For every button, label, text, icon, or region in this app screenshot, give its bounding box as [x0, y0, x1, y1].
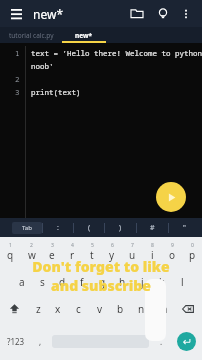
button[interactable]: k [152, 268, 172, 295]
button[interactable]: Hints [152, 3, 174, 25]
button[interactable]: Backspace [173, 295, 202, 322]
staticText: Don't forget to like [32, 257, 170, 276]
button[interactable]: Open folder [126, 3, 148, 25]
button[interactable]: a [11, 268, 32, 295]
staticText: i [151, 248, 154, 262]
staticText: 1 [15, 48, 20, 58]
button[interactable]: g [92, 268, 112, 295]
button[interactable]: 8 [142, 241, 162, 268]
button[interactable]: : [43, 218, 73, 237]
button[interactable]: c [68, 295, 89, 322]
button[interactable]: ( [74, 218, 104, 237]
staticText: 1 [9, 242, 12, 249]
staticText: b [117, 302, 124, 316]
button[interactable]: f [72, 268, 92, 295]
staticText: tutorial calc.py [9, 31, 54, 40]
staticText: a [19, 275, 25, 289]
staticText: 9 [171, 242, 174, 249]
staticText: u [129, 248, 136, 262]
button[interactable]: 0 [182, 241, 202, 268]
staticText: e [49, 248, 55, 262]
staticText: 2 [15, 74, 20, 84]
staticText: ( [88, 223, 91, 233]
button[interactable]: l [172, 268, 192, 295]
staticText: l [181, 275, 184, 289]
button[interactable]: " [169, 218, 200, 237]
button[interactable]: 9 [162, 241, 182, 268]
staticText: print(text) [31, 87, 81, 97]
button[interactable]: v [89, 295, 110, 322]
staticText: p [189, 248, 196, 262]
button[interactable]: 7 [122, 241, 142, 268]
button[interactable]: b [110, 295, 131, 322]
staticText: , [39, 336, 42, 347]
staticText: Tab [22, 224, 32, 232]
button[interactable]: n [131, 295, 152, 322]
staticText: text = 'Hello there! Welcome to python [31, 48, 202, 58]
button[interactable]: 3 [42, 241, 62, 268]
staticText: z [36, 302, 41, 316]
staticText: h [119, 275, 126, 289]
staticText: 6 [111, 242, 114, 249]
staticText: 0 [191, 242, 194, 249]
button[interactable]: ) [105, 218, 136, 237]
staticText: new* [75, 31, 93, 40]
staticText: y [109, 248, 115, 262]
button[interactable]: # [137, 218, 168, 237]
button[interactable]: More options [176, 4, 196, 24]
button[interactable]: 1 [0, 241, 21, 268]
button[interactable]: 5 [82, 241, 102, 268]
staticText: c [76, 302, 81, 316]
button[interactable]: . [152, 322, 170, 360]
staticText: g [99, 275, 106, 289]
button[interactable]: d [52, 268, 72, 295]
staticText: 7 [131, 242, 134, 249]
staticText: # [150, 223, 155, 233]
button[interactable]: , [31, 322, 49, 360]
staticText: 3 [15, 87, 20, 97]
button[interactable]: Shift [0, 295, 28, 322]
button[interactable]: tutorial calc.py [0, 27, 62, 43]
staticText: new* [33, 6, 63, 22]
staticText: f [80, 275, 84, 289]
button[interactable]: x [48, 295, 68, 322]
staticText: : [57, 223, 59, 233]
staticText: n [138, 302, 145, 316]
staticText: " [183, 223, 186, 233]
staticText: ) [119, 223, 122, 233]
staticText: k [159, 275, 165, 289]
button[interactable]: 2 [21, 241, 42, 268]
staticText: ?123 [7, 336, 25, 347]
staticText: s [40, 275, 45, 289]
staticText: q [7, 248, 14, 262]
staticText: r [70, 248, 75, 262]
button[interactable]: j [132, 268, 152, 295]
button[interactable]: Space [52, 335, 149, 348]
button[interactable]: z [28, 295, 48, 322]
button[interactable]: m [152, 295, 173, 322]
staticText: 5 [91, 242, 94, 249]
button[interactable]: 4 [62, 241, 82, 268]
button[interactable]: h [112, 268, 132, 295]
button[interactable]: s [32, 268, 52, 295]
staticText: m [158, 302, 168, 316]
button[interactable]: ?123 [0, 322, 31, 360]
button[interactable]: Tab [12, 222, 42, 234]
button[interactable]: Run [156, 182, 186, 212]
button[interactable]: Menu [6, 4, 26, 24]
staticText: d [59, 275, 66, 289]
staticText: j [141, 275, 144, 289]
staticText: w [28, 248, 36, 262]
staticText: . [160, 336, 163, 347]
staticText: v [97, 302, 103, 316]
staticText: and subscribe [51, 276, 151, 295]
staticText: x [55, 302, 61, 316]
button[interactable]: Enter [177, 332, 196, 351]
staticText: o [169, 248, 176, 262]
staticText: 8 [151, 242, 154, 249]
staticText: t [90, 248, 94, 262]
button[interactable]: new* [62, 27, 106, 43]
staticText: 2 [30, 242, 33, 249]
button[interactable]: 6 [102, 241, 122, 268]
staticText: 3 [51, 242, 54, 249]
